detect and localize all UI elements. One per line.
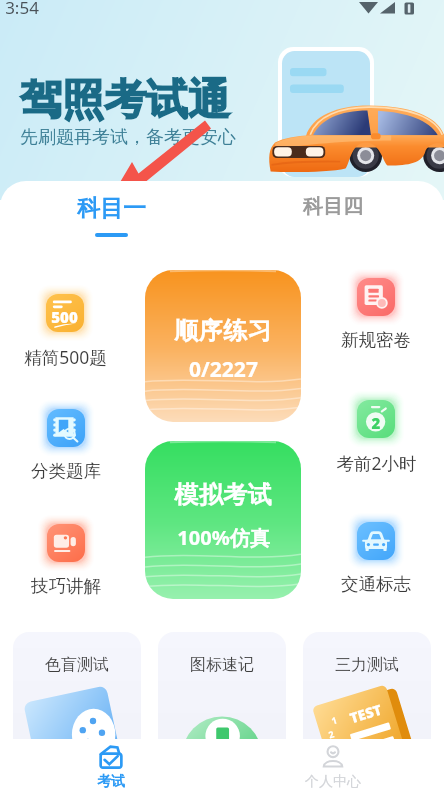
staticText: 500 (51, 307, 78, 327)
staticText: 三力测试 (335, 655, 399, 675)
staticText: 交通标志 (341, 573, 411, 595)
staticText: 考试 (97, 773, 125, 791)
button[interactable]: 科目一 (0, 194, 222, 246)
staticText: 科目四 (303, 194, 363, 219)
button[interactable]: 个人中心 (222, 739, 444, 794)
button[interactable]: 分类题库 (11, 404, 121, 480)
staticText: 2 (326, 727, 336, 741)
button[interactable]: 技巧讲解 (11, 519, 121, 595)
staticText: 图标速记 (190, 655, 254, 675)
staticText: 驾照考试通 (20, 74, 230, 127)
staticText: 分类题库 (31, 460, 101, 482)
staticText: 顺序练习 (174, 316, 272, 346)
staticText: 精简500题 (24, 345, 107, 369)
button[interactable]: 2 (321, 395, 431, 471)
staticText: 色盲测试 (45, 655, 109, 675)
button[interactable]: TEST (303, 632, 431, 762)
staticText: 模拟考试 (174, 480, 272, 510)
button[interactable]: 交通标志 (321, 517, 431, 593)
button[interactable]: 新规密卷 (321, 273, 431, 349)
staticText: 考前2小时 (336, 451, 417, 475)
button[interactable]: 模拟考试 (145, 441, 301, 599)
staticText: 2 (357, 413, 395, 433)
staticText: 3:54 (5, 0, 39, 19)
staticText: 科目一 (77, 194, 146, 223)
staticText: 0/2227 (189, 355, 258, 384)
staticText: 先刷题再考试，备考更安心 (20, 126, 236, 149)
button[interactable]: 500 (10, 289, 120, 365)
staticText: 个人中心 (305, 773, 361, 791)
staticText: 新规密卷 (341, 329, 411, 351)
button[interactable]: 顺序练习 (145, 270, 301, 422)
staticText: 100%仿真 (177, 524, 270, 551)
staticText: 技巧讲解 (31, 575, 101, 597)
button[interactable]: 色盲测试 (13, 632, 141, 762)
button[interactable]: 考试 (0, 739, 222, 794)
staticText: TEST (347, 700, 384, 727)
staticText: 1 (329, 713, 339, 727)
button[interactable]: 科目四 (222, 194, 444, 246)
button[interactable]: 图标速记 (158, 632, 286, 762)
